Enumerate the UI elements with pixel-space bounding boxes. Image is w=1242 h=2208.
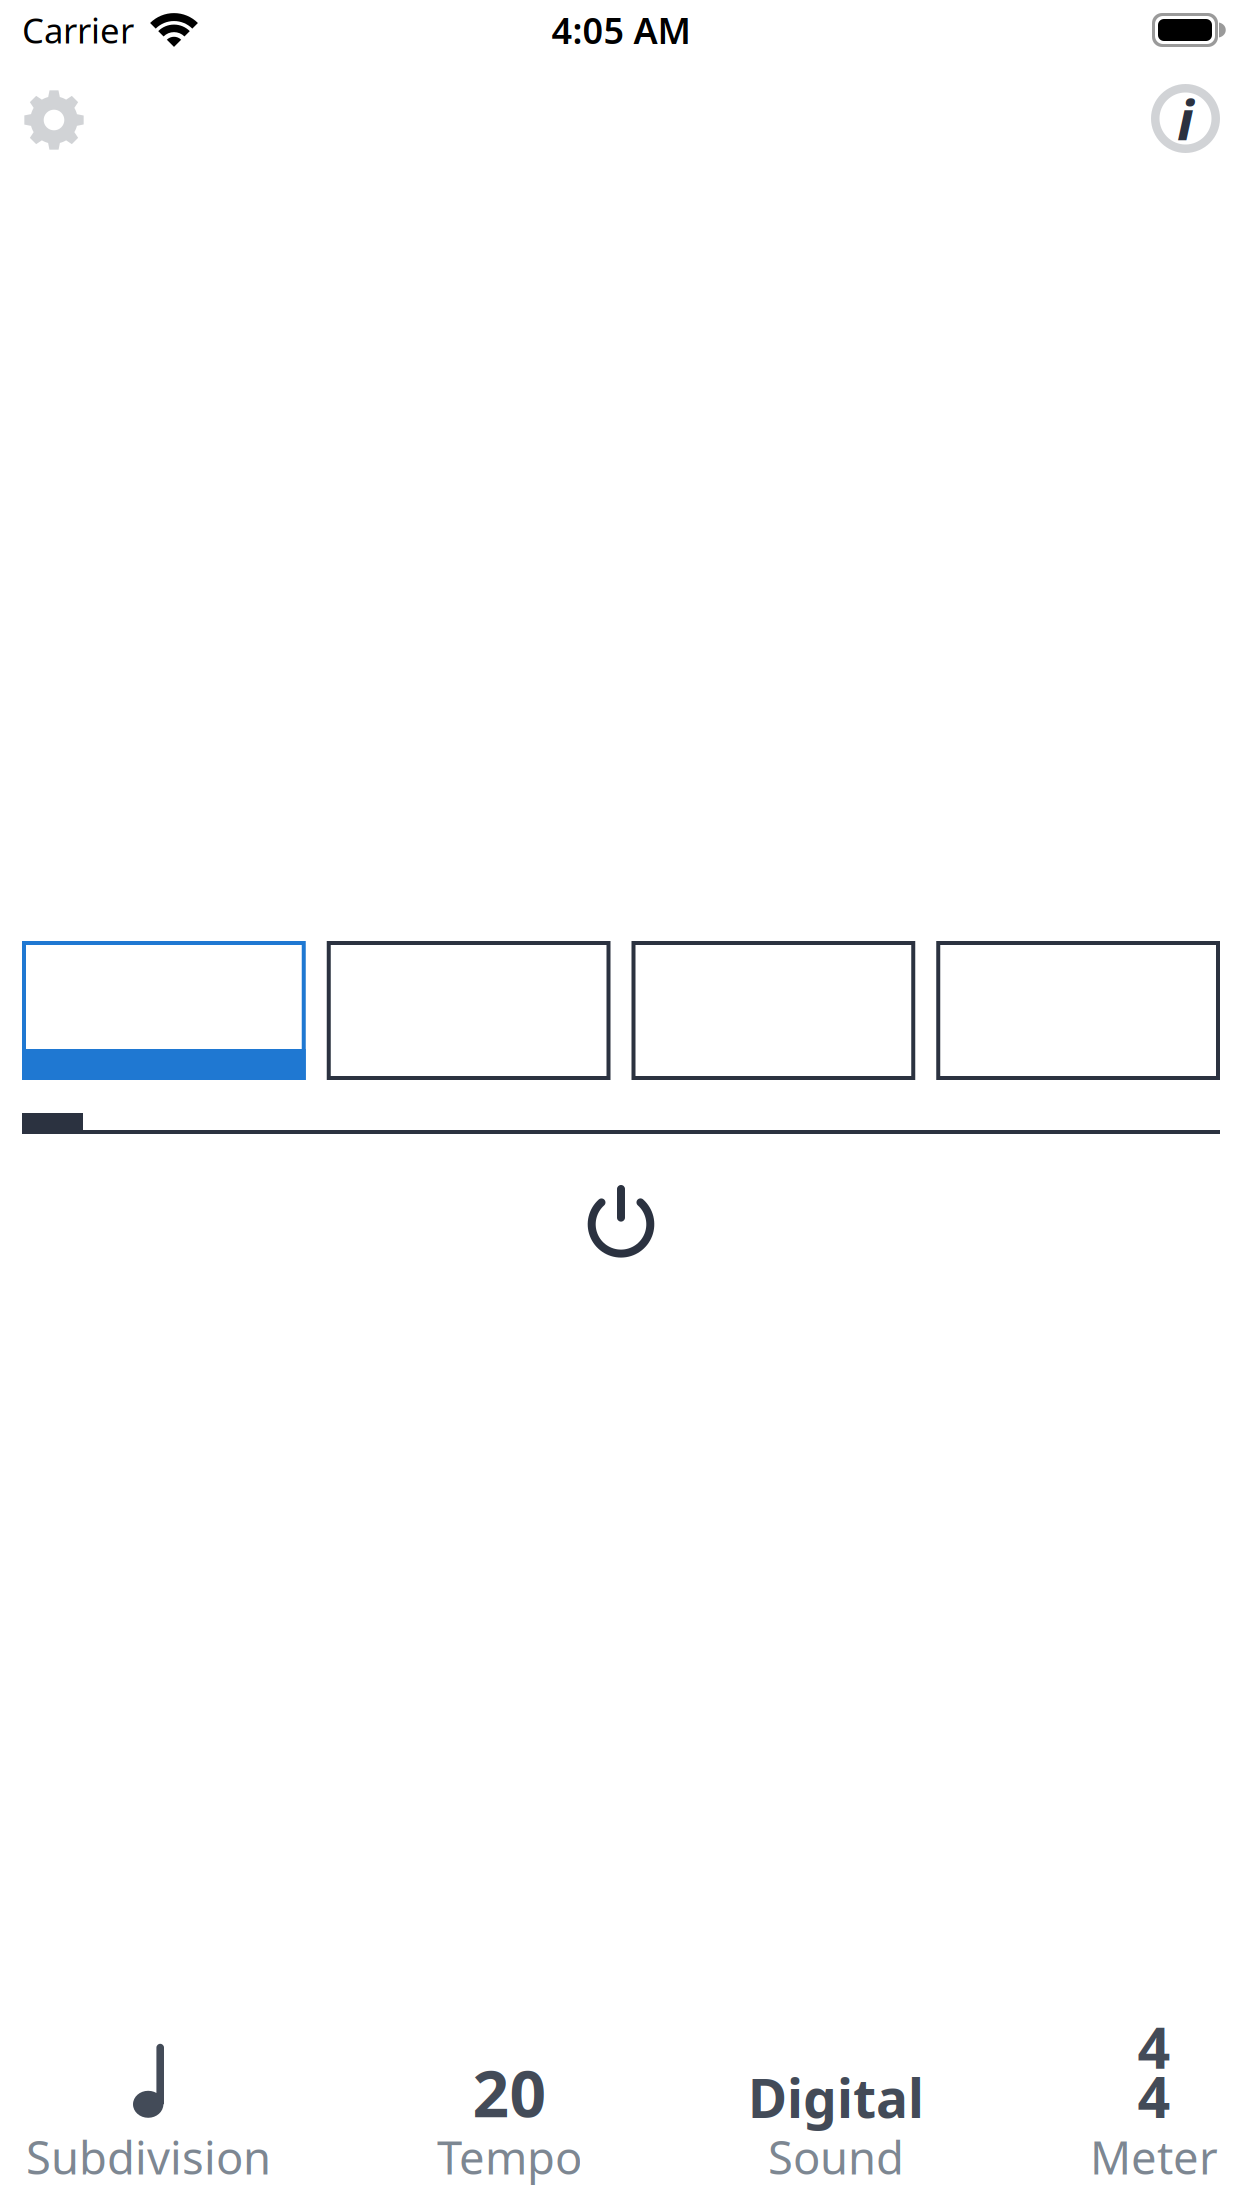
staticText: 4:05 AM	[551, 6, 690, 54]
staticText: Sound	[768, 2127, 904, 2187]
staticText: 20	[472, 2050, 546, 2135]
staticText: Meter	[1090, 2127, 1218, 2187]
button[interactable]: 4	[1090, 2008, 1218, 2187]
staticText: 4	[1137, 2058, 1170, 2134]
button[interactable]: 20	[437, 2050, 582, 2187]
button[interactable]: Settings	[0, 61, 108, 172]
button[interactable]: Beat 2	[327, 941, 611, 1080]
button[interactable]: Beat 3	[631, 941, 915, 1080]
staticText: 4	[1137, 2008, 1170, 2085]
button[interactable]: Beat 1	[22, 941, 306, 1080]
staticText: i	[1177, 81, 1194, 156]
staticText: Subdivision	[26, 2127, 271, 2187]
button[interactable]: Beat 4	[936, 941, 1220, 1080]
button[interactable]: Subdivision	[26, 2044, 271, 2187]
staticText: Digital	[748, 2062, 924, 2133]
button[interactable]: Tempo slider	[0, 1113, 1242, 1134]
staticText: Tempo	[437, 2127, 582, 2187]
staticText: Carrier	[22, 7, 134, 53]
button[interactable]: Start metronome	[584, 1185, 658, 1259]
button[interactable]: Digital	[748, 2062, 924, 2187]
button[interactable]: Info	[1127, 60, 1242, 173]
